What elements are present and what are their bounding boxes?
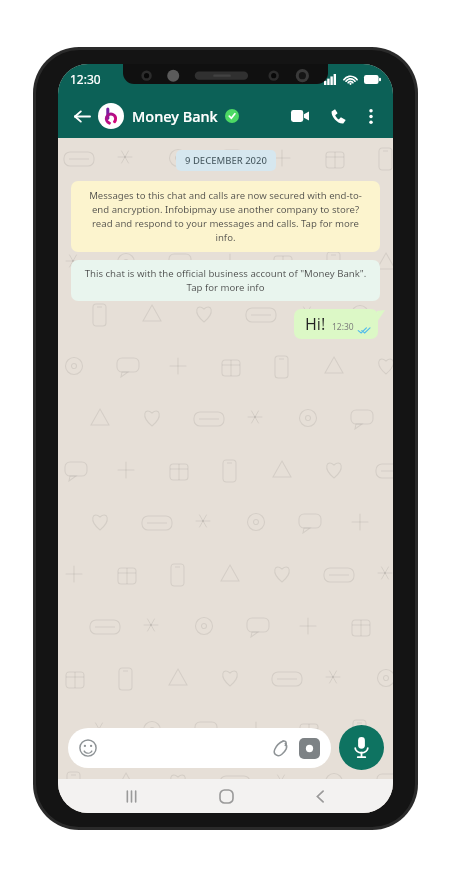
staticText: Messages to this chat and calls are now …	[83, 189, 368, 244]
button[interactable]: Messages to this chat and calls are now …	[71, 181, 380, 252]
staticText: Money Bank	[132, 106, 218, 126]
staticText: 9 DECEMBER 2020	[185, 154, 267, 167]
button[interactable]: Voice call	[323, 101, 353, 131]
button[interactable]: Camera	[299, 738, 320, 759]
button[interactable]: Home	[204, 779, 248, 813]
staticText: 12:30	[332, 321, 354, 333]
button[interactable]: 9 DECEMBER 2020	[176, 150, 276, 171]
button[interactable]: Attach	[68, 728, 331, 768]
button[interactable]: Back	[66, 101, 96, 131]
button[interactable]: Hi!	[294, 309, 378, 339]
button[interactable]: Back	[298, 779, 342, 813]
button[interactable]: Record voice message	[339, 725, 384, 770]
button[interactable]: Video call	[285, 101, 315, 131]
staticText: 12:30	[70, 71, 101, 87]
staticText: This chat is with the official business …	[81, 267, 370, 294]
button[interactable]: This chat is with the official business …	[71, 260, 380, 301]
staticText: Hi!	[305, 313, 326, 335]
button[interactable]	[98, 103, 124, 129]
button[interactable]: Recents	[109, 779, 153, 813]
button[interactable]: Attach	[269, 737, 291, 759]
button[interactable]: More options	[357, 102, 385, 130]
